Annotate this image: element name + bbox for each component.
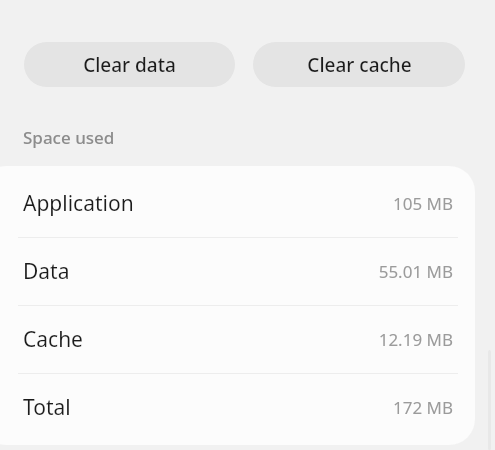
button[interactable]: Cache bbox=[0, 306, 475, 373]
staticText: 12.19 MB bbox=[378, 328, 453, 351]
button[interactable]: Clear data bbox=[24, 42, 235, 87]
button[interactable]: Data bbox=[0, 238, 475, 305]
button[interactable]: Application bbox=[0, 170, 475, 237]
staticText: Total bbox=[23, 393, 71, 422]
staticText: Clear data bbox=[83, 52, 176, 78]
staticText: Application bbox=[23, 189, 134, 218]
staticText: Space used bbox=[23, 126, 115, 149]
staticText: 105 MB bbox=[392, 192, 453, 215]
staticText: 55.01 MB bbox=[378, 260, 453, 283]
staticText: Data bbox=[23, 257, 70, 286]
staticText: Clear cache bbox=[307, 52, 412, 78]
staticText: 172 MB bbox=[392, 396, 453, 419]
staticText: Cache bbox=[23, 325, 83, 354]
button[interactable]: Clear cache bbox=[253, 42, 465, 87]
button[interactable]: Total bbox=[0, 374, 475, 441]
